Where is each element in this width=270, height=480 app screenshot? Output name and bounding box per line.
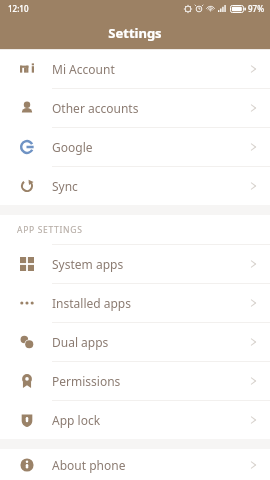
other: Permissions xyxy=(20,374,34,388)
button[interactable]: Other accounts xyxy=(0,89,270,127)
staticText: System apps xyxy=(52,256,250,272)
other: About phone xyxy=(20,458,34,472)
button[interactable]: System apps xyxy=(0,245,270,283)
staticText: APP SETTINGS xyxy=(17,224,83,236)
staticText: Dual apps xyxy=(52,334,250,350)
button[interactable]: App lock xyxy=(0,401,270,439)
other: Mi Account xyxy=(20,62,34,76)
button[interactable]: About phone xyxy=(0,449,270,480)
staticText: Mi Account xyxy=(52,61,250,77)
other: Dual apps xyxy=(20,335,34,349)
button[interactable]: Permissions xyxy=(0,362,270,400)
other: App lock xyxy=(20,413,34,427)
staticText: Google xyxy=(52,139,250,155)
staticText: About phone xyxy=(52,457,250,473)
staticText: Permissions xyxy=(52,373,250,389)
staticText: Sync xyxy=(52,178,250,194)
staticText: 12:10 xyxy=(8,3,29,14)
staticText: Other accounts xyxy=(52,100,250,116)
button[interactable]: Dual apps xyxy=(0,323,270,361)
other: Sync xyxy=(20,179,34,193)
button[interactable]: Installed apps xyxy=(0,284,270,322)
button[interactable]: Mi Account xyxy=(0,50,270,88)
staticText: Installed apps xyxy=(52,295,250,311)
staticText: Settings xyxy=(108,24,162,42)
staticText: 97% xyxy=(248,3,264,14)
other: Google xyxy=(20,140,34,154)
button[interactable]: Sync xyxy=(0,167,270,205)
button[interactable]: Google xyxy=(0,128,270,166)
other: System apps xyxy=(20,257,34,271)
other: Installed apps xyxy=(20,296,34,310)
staticText: App lock xyxy=(52,412,250,428)
other: Other accounts xyxy=(20,101,34,115)
